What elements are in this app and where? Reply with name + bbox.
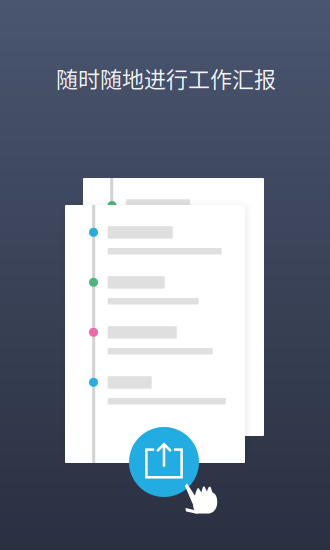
staticText: 随时随地进行工作汇报: [56, 62, 276, 94]
button[interactable]: Share: [129, 427, 199, 497]
